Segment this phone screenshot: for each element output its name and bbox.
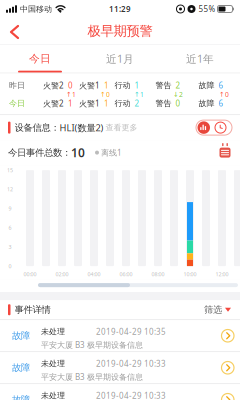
staticText: 故障: [198, 80, 214, 90]
staticText: 平安大厦 B3 极早期设备信息: [41, 339, 143, 350]
staticText: 行动: [114, 80, 130, 90]
staticText: 2019-04-29 10:33: [96, 358, 166, 369]
staticText: 0: [68, 80, 73, 91]
staticText: 极早期预警: [87, 23, 152, 39]
staticText: 12: [7, 186, 13, 193]
staticText: 筛选: [204, 304, 222, 315]
staticText: 行动: [114, 98, 130, 108]
staticText: 未处理: [41, 391, 65, 400]
staticText: 1: [68, 98, 73, 109]
staticText: 9: [8, 205, 11, 212]
staticText: 06:00: [119, 271, 132, 278]
button[interactable]: 选择日期: [219, 146, 240, 159]
staticText: 1: [104, 98, 109, 109]
staticText: 00:00: [23, 271, 36, 278]
staticText: 离线1: [101, 147, 122, 158]
staticText: 2: [134, 98, 139, 109]
staticText: 未处理: [41, 327, 65, 337]
staticText: 未处理: [41, 359, 65, 369]
staticText: 火警2: [43, 80, 64, 91]
staticText: 故障: [12, 330, 30, 341]
staticText: 2: [175, 80, 180, 91]
staticText: 火警1: [79, 98, 100, 109]
staticText: 近1年: [186, 52, 214, 66]
staticText: 0: [106, 90, 110, 99]
staticText: 11:29: [109, 4, 131, 14]
staticText: 设备信息：: [14, 122, 59, 133]
staticText: ↑: [100, 91, 106, 98]
staticText: 查看更多: [105, 123, 137, 132]
staticText: 0: [225, 90, 229, 99]
staticText: 04:00: [87, 271, 100, 278]
staticText: ↑: [134, 91, 140, 98]
staticText: 6: [218, 80, 223, 91]
staticText: 今日: [9, 98, 25, 108]
staticText: 15: [7, 167, 13, 174]
staticText: 今日: [29, 52, 51, 65]
staticText: 1: [104, 80, 109, 91]
staticText: HLI(数量2): [59, 121, 103, 134]
staticText: 10: [71, 145, 85, 160]
staticText: 火警1: [79, 80, 100, 91]
button[interactable]: 筛选: [204, 304, 240, 315]
staticText: 火警2: [43, 98, 64, 109]
staticText: 2019-04-29 10:35: [96, 326, 166, 337]
staticText: 55%: [198, 4, 215, 14]
staticText: 警告: [155, 98, 171, 108]
staticText: 10:00: [183, 271, 196, 278]
staticText: 1: [140, 90, 144, 99]
staticText: 0: [175, 98, 180, 109]
staticText: 2: [179, 90, 183, 99]
staticText: 平安大厦 B3 极早期设备信息: [41, 371, 143, 382]
staticText: 1: [134, 80, 139, 91]
button[interactable]: 今日: [0, 45, 80, 73]
staticText: 6: [218, 98, 223, 109]
staticText: 12:00: [215, 271, 228, 278]
staticText: 1: [72, 90, 76, 99]
staticText: 02:00: [55, 271, 68, 278]
staticText: ↑: [66, 91, 72, 98]
staticText: 警告: [155, 80, 171, 90]
button[interactable]: 近1年: [160, 45, 240, 73]
staticText: 3: [8, 243, 11, 250]
staticText: 0: [8, 263, 11, 270]
staticText: 中国移动: [20, 4, 52, 14]
staticText: 今日事件总数：: [8, 147, 71, 158]
staticText: 事件详情: [14, 304, 50, 315]
button[interactable]: 切换图表: [196, 120, 240, 135]
staticText: 6: [8, 224, 11, 231]
button[interactable]: 近1月: [80, 45, 160, 73]
staticText: ↓: [173, 91, 179, 98]
button[interactable]: 故障: [0, 320, 240, 351]
button[interactable]: 查看更多: [103, 123, 137, 132]
staticText: ↑: [219, 91, 225, 98]
staticText: 故障: [198, 98, 214, 108]
staticText: 近1月: [106, 52, 134, 66]
button[interactable]: 故障: [0, 384, 240, 400]
staticText: 2019-04-29 10:33: [96, 390, 166, 400]
button[interactable]: 故障: [0, 352, 240, 383]
staticText: 故障: [12, 362, 30, 373]
button[interactable]: 返回: [0, 23, 20, 39]
staticText: 08:00: [151, 271, 164, 278]
staticText: 故障: [12, 394, 30, 400]
staticText: 昨日: [9, 80, 25, 90]
